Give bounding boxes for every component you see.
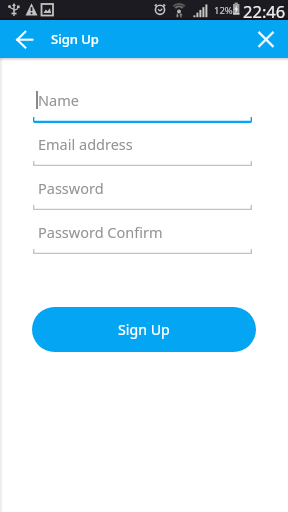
- staticText: Name: [38, 90, 79, 110]
- button[interactable]: Sign Up: [32, 307, 256, 352]
- button[interactable]: Name: [33, 78, 252, 122]
- button[interactable]: [0, 20, 44, 58]
- button[interactable]: [244, 20, 288, 58]
- staticText: Sign Up: [118, 320, 170, 339]
- staticText: 22:46: [243, 0, 286, 20]
- button[interactable]: Email address: [33, 122, 252, 166]
- staticText: Password Confirm: [38, 222, 163, 242]
- button[interactable]: Password: [33, 166, 252, 210]
- staticText: Sign Up: [51, 30, 99, 48]
- button[interactable]: Password Confirm: [33, 210, 252, 254]
- staticText: Email address: [38, 134, 133, 154]
- staticText: Password: [38, 178, 104, 198]
- staticText: 12%: [214, 4, 233, 17]
